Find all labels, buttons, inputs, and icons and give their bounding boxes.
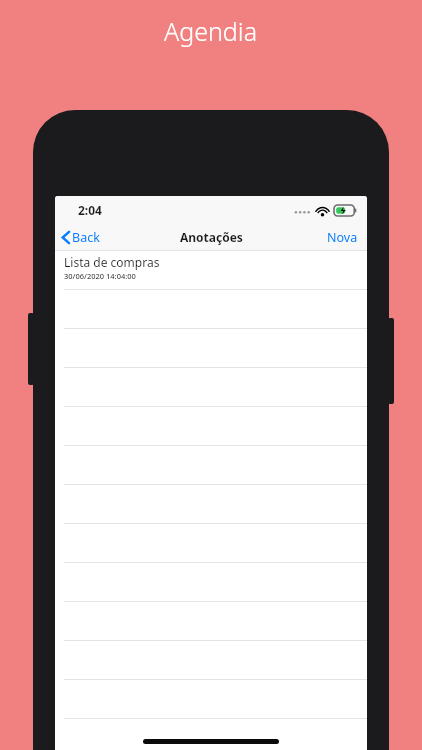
button[interactable]: Back [55, 224, 108, 250]
button[interactable]: Nova [318, 224, 367, 250]
staticText: 2:04 [78, 202, 102, 218]
staticText: Back [72, 229, 100, 246]
staticText: Lista de compras [64, 254, 160, 270]
staticText: Nova [327, 229, 358, 246]
staticText: Anotações [180, 229, 243, 245]
staticText: Agendia [164, 14, 258, 48]
button[interactable]: Lista de compras [55, 251, 367, 289]
staticText: 30/06/2020 14:04:00 [64, 271, 136, 281]
